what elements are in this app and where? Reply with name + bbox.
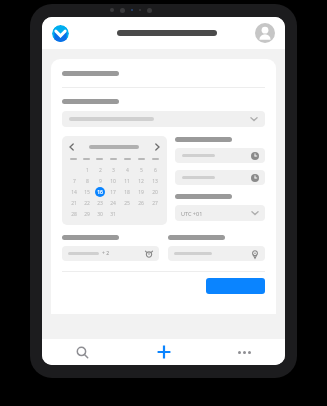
button[interactable]: 14 — [69, 187, 79, 197]
button[interactable]: 8 — [82, 176, 92, 186]
staticText: 30 — [97, 211, 103, 218]
staticText: 13 — [152, 178, 158, 185]
staticText: 2 — [99, 167, 102, 174]
button[interactable] — [175, 148, 265, 163]
staticText: 5 — [140, 167, 143, 174]
staticText: 29 — [84, 211, 90, 218]
button[interactable]: 7 — [69, 176, 79, 186]
button[interactable]: More options — [204, 339, 285, 365]
button[interactable]: + 2 — [62, 246, 159, 261]
button[interactable]: 31 — [108, 209, 118, 219]
button[interactable]: 20 — [150, 187, 160, 197]
staticText: 21 — [71, 200, 77, 207]
staticText: 28 — [71, 211, 77, 218]
button[interactable]: 1 — [82, 165, 92, 175]
staticText: 15 — [84, 189, 90, 196]
button[interactable]: 25 — [122, 198, 132, 208]
button[interactable] — [175, 170, 265, 185]
staticText: 27 — [152, 200, 158, 207]
button[interactable]: 9 — [95, 176, 105, 186]
staticText: 26 — [138, 200, 144, 207]
staticText: 17 — [110, 189, 116, 196]
button[interactable]: 6 — [150, 165, 160, 175]
button[interactable]: Search — [42, 339, 123, 365]
button[interactable]: 2 — [95, 165, 105, 175]
staticText: 22 — [84, 200, 90, 207]
button[interactable]: 4 — [122, 165, 132, 175]
staticText: 18 — [124, 189, 130, 196]
staticText: 31 — [110, 211, 116, 218]
button[interactable]: Next month — [152, 142, 162, 152]
staticText: 16 — [97, 189, 103, 196]
button[interactable]: 26 — [136, 198, 146, 208]
button[interactable]: 18 — [122, 187, 132, 197]
staticText: 23 — [97, 200, 103, 207]
button[interactable]: 3 — [108, 165, 118, 175]
button[interactable]: 27 — [150, 198, 160, 208]
button[interactable]: Add — [123, 339, 204, 365]
button[interactable]: App logo — [52, 25, 69, 42]
staticText: 7 — [73, 178, 76, 185]
staticText: UTC +01 — [181, 210, 203, 217]
staticText: 3 — [112, 167, 115, 174]
button[interactable]: 12 — [136, 176, 146, 186]
staticText: 25 — [124, 200, 130, 207]
staticText: 14 — [71, 189, 77, 196]
button[interactable] — [62, 111, 265, 127]
button[interactable]: 29 — [82, 209, 92, 219]
staticText: 10 — [110, 178, 116, 185]
button[interactable]: Previous month — [67, 142, 77, 152]
button[interactable]: 19 — [136, 187, 146, 197]
button[interactable]: 30 — [95, 209, 105, 219]
staticText: 8 — [86, 178, 89, 185]
button[interactable]: 5 — [136, 165, 146, 175]
staticText: + 2 — [102, 250, 110, 257]
staticText: 20 — [152, 189, 158, 196]
button[interactable]: 16 — [95, 187, 105, 197]
staticText: 24 — [110, 200, 116, 207]
button[interactable]: 24 — [108, 198, 118, 208]
button[interactable]: 10 — [108, 176, 118, 186]
staticText: 1 — [86, 167, 89, 174]
button[interactable]: Submit — [206, 278, 265, 294]
button[interactable]: 28 — [69, 209, 79, 219]
button[interactable]: 22 — [82, 198, 92, 208]
staticText: 19 — [138, 189, 144, 196]
button[interactable]: UTC +01 — [175, 205, 265, 221]
staticText: 11 — [124, 178, 130, 185]
button[interactable]: 15 — [82, 187, 92, 197]
button[interactable]: 11 — [122, 176, 132, 186]
button[interactable]: 13 — [150, 176, 160, 186]
button[interactable] — [168, 246, 265, 261]
button[interactable]: Account — [255, 23, 275, 43]
staticText: 6 — [154, 167, 157, 174]
staticText: 12 — [138, 178, 144, 185]
staticText: 9 — [99, 178, 102, 185]
staticText: 4 — [126, 167, 129, 174]
button[interactable]: 17 — [108, 187, 118, 197]
button[interactable]: 21 — [69, 198, 79, 208]
button[interactable]: 23 — [95, 198, 105, 208]
